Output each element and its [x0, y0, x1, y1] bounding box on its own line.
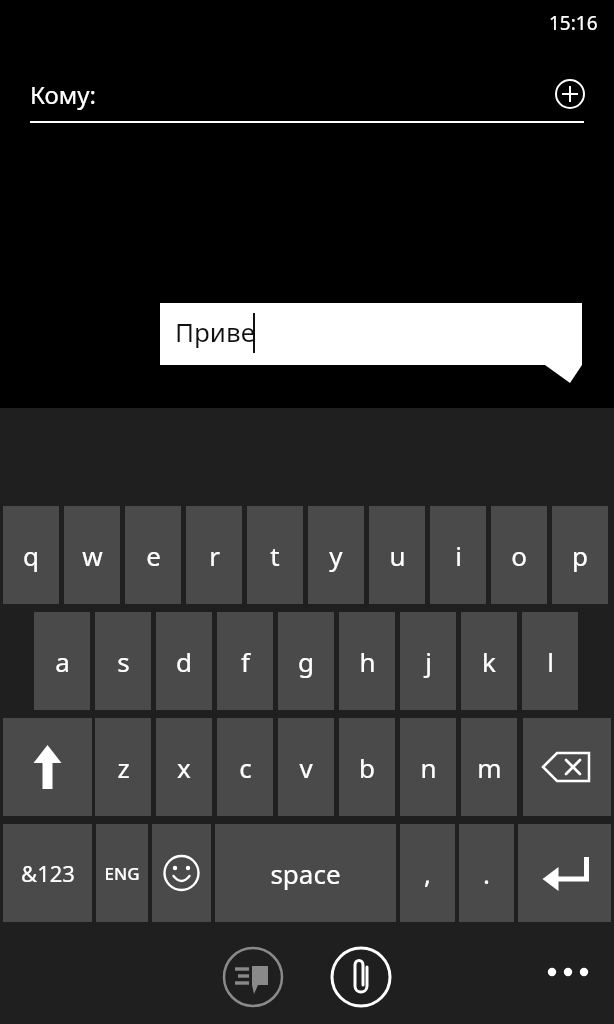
button[interactable]: e	[125, 506, 181, 604]
staticText: &123	[21, 858, 75, 888]
button[interactable]: ENG	[96, 824, 148, 922]
staticText: Приве	[175, 314, 256, 349]
staticText: l	[547, 644, 554, 679]
staticText: g	[298, 644, 314, 679]
staticText: n	[420, 750, 437, 785]
button[interactable]: b	[339, 718, 395, 816]
button[interactable]: Кому:	[0, 62, 614, 124]
staticText: z	[117, 750, 130, 785]
button[interactable]: m	[461, 718, 517, 816]
button[interactable]: Enter	[518, 824, 611, 922]
button[interactable]: Приве	[160, 303, 582, 383]
button[interactable]: l	[522, 612, 578, 710]
staticText: u	[389, 538, 406, 573]
staticText: i	[455, 538, 462, 573]
button[interactable]: x	[156, 718, 212, 816]
staticText: x	[177, 750, 191, 785]
button[interactable]: &123	[3, 824, 92, 922]
staticText: Кому:	[30, 78, 96, 111]
button[interactable]: t	[247, 506, 303, 604]
button[interactable]: g	[278, 612, 334, 710]
button[interactable]: p	[552, 506, 608, 604]
staticText: h	[359, 644, 376, 679]
staticText: d	[176, 644, 192, 679]
button[interactable]: .	[459, 824, 514, 922]
staticText: y	[329, 538, 343, 573]
button[interactable]: More options	[540, 946, 600, 998]
staticText: ,	[424, 856, 431, 891]
button[interactable]: q	[3, 506, 59, 604]
staticText: e	[146, 538, 161, 573]
button[interactable]: ,	[400, 824, 455, 922]
button[interactable]: r	[186, 506, 242, 604]
staticText: a	[55, 644, 70, 679]
button[interactable]: Backspace	[523, 718, 611, 816]
staticText: k	[482, 644, 496, 679]
button[interactable]: i	[430, 506, 486, 604]
button[interactable]: u	[369, 506, 425, 604]
button[interactable]: space	[215, 824, 396, 922]
button[interactable]: Attach	[328, 944, 394, 1010]
staticText: 15:16	[549, 10, 598, 36]
staticText: q	[23, 538, 39, 573]
button[interactable]: n	[400, 718, 456, 816]
button[interactable]: c	[217, 718, 273, 816]
staticText: j	[425, 644, 432, 679]
button[interactable]: Add recipient	[546, 70, 594, 118]
staticText: m	[477, 750, 502, 785]
staticText: s	[117, 644, 130, 679]
staticText: ENG	[104, 862, 140, 885]
button[interactable]: Shift	[3, 718, 92, 816]
staticText: p	[572, 538, 588, 573]
staticText: f	[241, 644, 250, 679]
button[interactable]: o	[491, 506, 547, 604]
button[interactable]: j	[400, 612, 456, 710]
staticText: r	[209, 538, 220, 573]
button[interactable]: d	[156, 612, 212, 710]
staticText: b	[359, 750, 375, 785]
button[interactable]: k	[461, 612, 517, 710]
button[interactable]: w	[64, 506, 120, 604]
staticText: space	[270, 856, 341, 891]
staticText: w	[82, 538, 103, 573]
button[interactable]: z	[95, 718, 151, 816]
staticText: o	[511, 538, 527, 573]
button[interactable]: a	[34, 612, 90, 710]
staticText: t	[270, 538, 280, 573]
button[interactable]: s	[95, 612, 151, 710]
button[interactable]: h	[339, 612, 395, 710]
button[interactable]: Send	[220, 944, 286, 1010]
button[interactable]: v	[278, 718, 334, 816]
staticText: c	[239, 750, 252, 785]
button[interactable]: Emoji	[152, 824, 211, 922]
button[interactable]: f	[217, 612, 273, 710]
button[interactable]: y	[308, 506, 364, 604]
staticText: .	[483, 856, 490, 891]
staticText: v	[299, 750, 313, 785]
